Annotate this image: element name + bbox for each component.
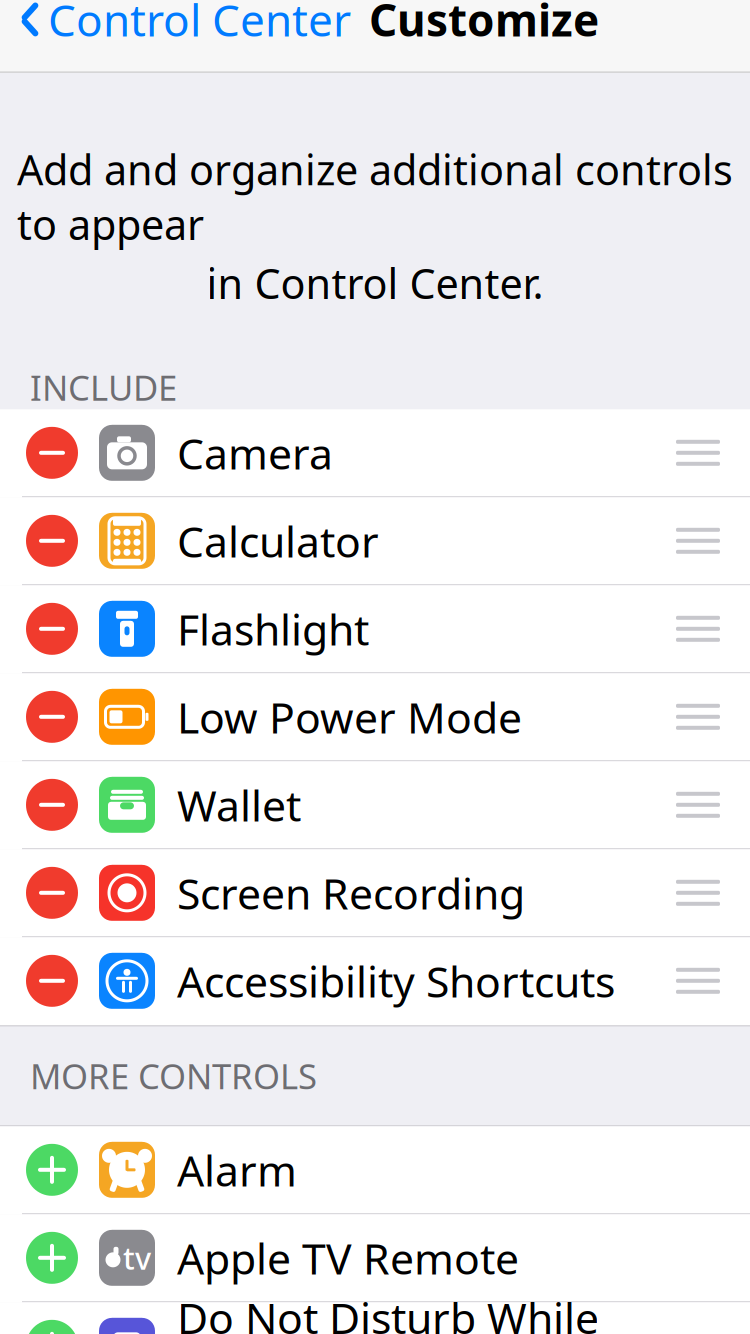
staticText: Calculator (177, 512, 379, 569)
button[interactable]: Calculator (0, 497, 750, 585)
staticText: Customize (369, 0, 599, 49)
button[interactable]: Low Power Mode (0, 673, 750, 761)
staticText: Low Power Mode (177, 688, 522, 745)
button[interactable]: Flashlight (0, 585, 750, 673)
button[interactable]: Do Not Disturb While Driving (0, 1302, 750, 1334)
staticText: in Control Center. (206, 255, 543, 310)
staticText: tv (123, 1237, 151, 1278)
staticText: Alarm (177, 1141, 297, 1198)
button[interactable] (0, 1214, 750, 1302)
button[interactable]: Accessibility Shortcuts (0, 937, 750, 1025)
staticText: Do Not Disturb While Driving (177, 1289, 599, 1334)
button[interactable]: Control Center (20, 0, 351, 55)
button[interactable]: Camera (0, 409, 750, 497)
staticText: Add and organize additional controls to … (17, 142, 733, 251)
staticText: Apple TV Remote (177, 1229, 519, 1286)
staticText: Screen Recording (177, 864, 525, 921)
staticText: Wallet (177, 776, 301, 833)
staticText: Accessibility Shortcuts (177, 952, 615, 1009)
button[interactable]: Alarm (0, 1126, 750, 1214)
button[interactable]: Wallet (0, 761, 750, 849)
staticText: Camera (177, 424, 333, 481)
button[interactable]: Screen Recording (0, 849, 750, 937)
staticText: Control Center (48, 0, 351, 49)
staticText: INCLUDE (30, 364, 177, 410)
staticText: MORE CONTROLS (30, 1053, 317, 1099)
staticText: Flashlight (177, 600, 369, 657)
